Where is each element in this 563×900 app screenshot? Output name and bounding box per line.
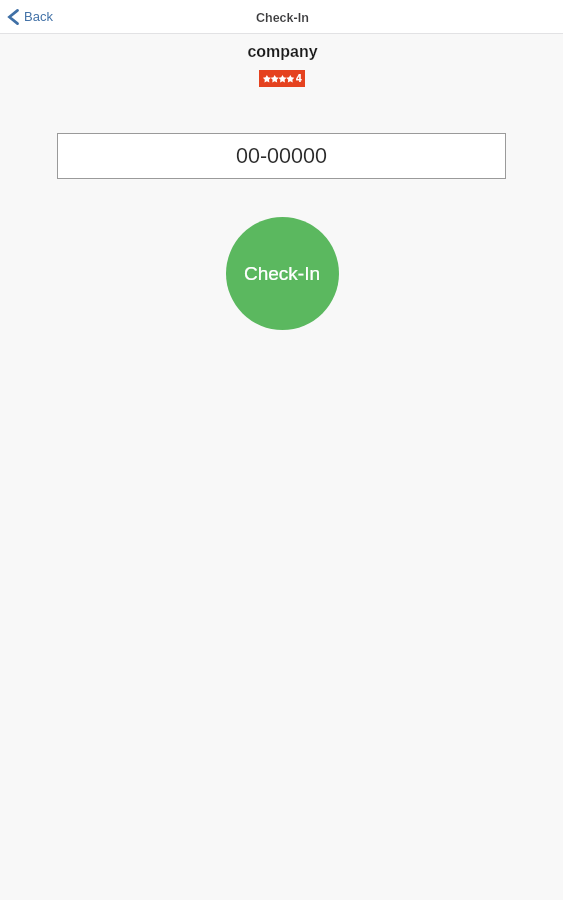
staticText: 4 bbox=[296, 73, 302, 84]
button[interactable]: Back bbox=[0, 0, 61, 33]
staticText: 00-00000 bbox=[236, 144, 327, 168]
other: Rating 4 out of 5 stars bbox=[259, 70, 305, 87]
button[interactable]: Check-In bbox=[226, 217, 339, 330]
button[interactable]: 00-00000 bbox=[57, 133, 506, 179]
staticText: Back bbox=[24, 9, 53, 24]
staticText: Check-In bbox=[256, 11, 309, 25]
staticText: Check-In bbox=[244, 263, 321, 284]
staticText: company bbox=[1, 43, 563, 61]
